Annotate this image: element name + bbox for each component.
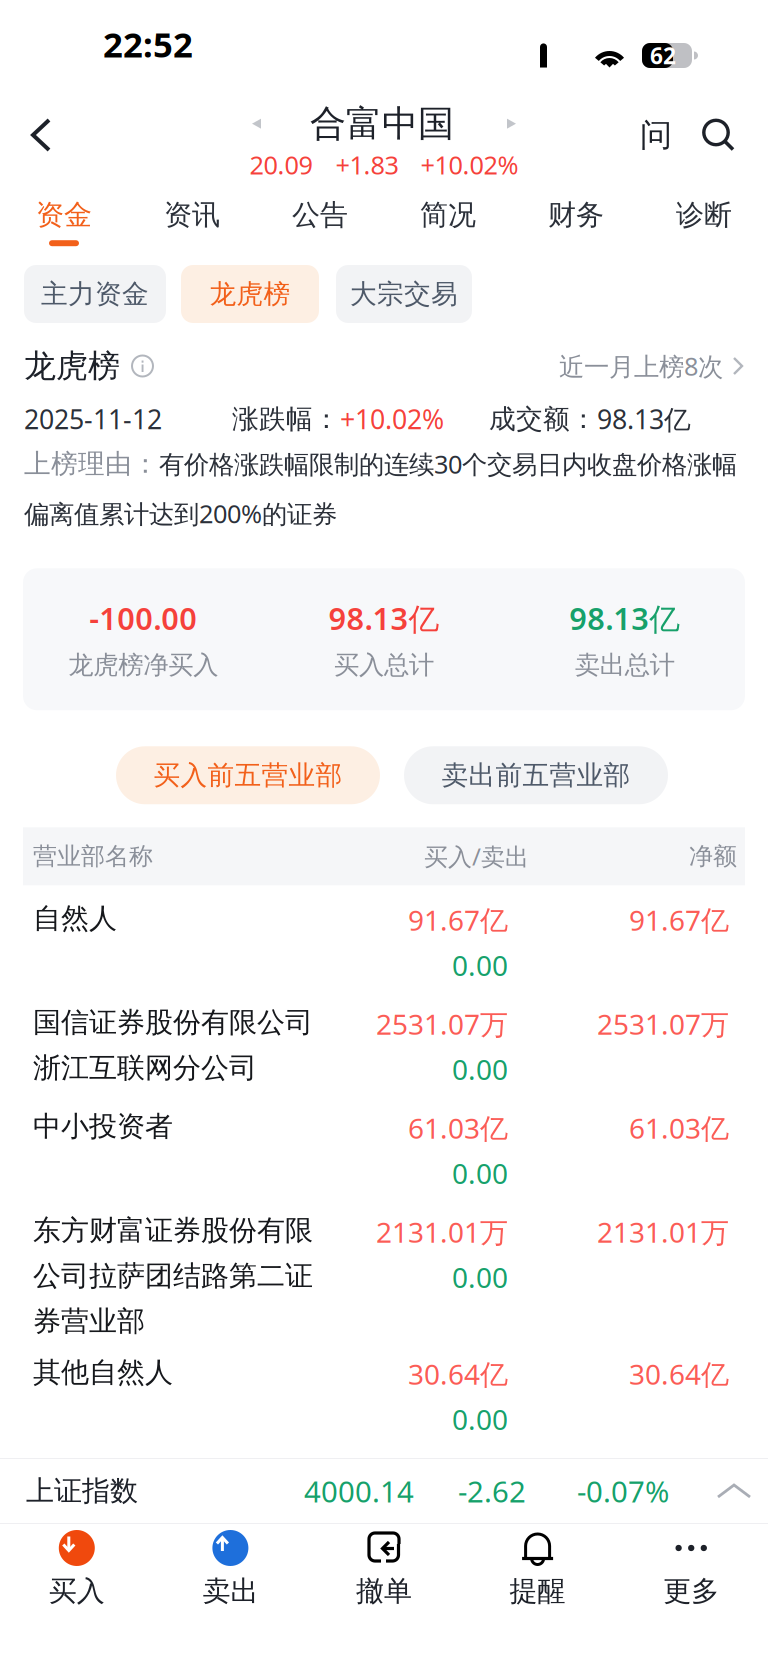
staticText: 61.03亿 [408,1109,508,1146]
button[interactable]: 搜索 [682,98,768,171]
staticText: 自然人 [33,901,117,936]
button[interactable]: 大宗交易 [336,265,472,323]
staticText: 中小投资者 [33,1109,173,1144]
staticText: 净额 [689,841,737,871]
staticText: 61.03亿 [629,1109,729,1146]
button[interactable]: 资讯 [128,182,256,258]
staticText: 22:52 [103,21,193,67]
button[interactable]: 公告 [256,182,384,258]
staticText: 2025-11-12 [24,401,162,437]
button[interactable]: 买入 [0,1530,154,1608]
staticText: 卖出总计 [575,650,675,681]
staticText: 有价格涨跌幅限制的连续30个交易日内收盘价格涨幅 [159,447,737,481]
staticText: 30.64亿 [408,1355,508,1392]
button[interactable]: 资金 [0,182,128,258]
staticText: 20.09 [249,148,312,181]
staticText: 简况 [420,198,476,232]
staticText: 2131.01万 [597,1213,729,1250]
staticText: 成交额： [489,403,597,435]
staticText: 问 [640,115,672,155]
button[interactable]: 诊断 [640,182,768,258]
staticText: 30.64亿 [629,1355,729,1392]
staticText: 近一月上榜8次 [559,349,723,383]
staticText: 诊断 [676,198,732,232]
button[interactable]: 其他自然人 [0,1339,768,1443]
staticText: 龙虎榜 [209,278,290,310]
staticText: 龙虎榜 [24,346,120,386]
staticText: 上证指数 [26,1474,138,1508]
staticText: 撤单 [356,1574,412,1608]
button[interactable]: 中小投资者 [0,1093,768,1197]
staticText: 资讯 [164,198,220,232]
staticText: 2531.07万 [597,1005,729,1042]
button[interactable]: 主力资金 [24,265,166,323]
staticText: +10.02% [420,148,518,181]
staticText: 买入/卖出 [424,840,529,872]
button[interactable]: 更多 [614,1530,768,1608]
staticText: 0.00 [452,1154,508,1192]
button[interactable]: 提醒 [461,1530,614,1608]
staticText: 62 [650,40,676,70]
staticText: 更多 [663,1574,719,1608]
button[interactable]: 自然人 [0,885,768,989]
staticText: -2.62 [458,1471,526,1510]
button[interactable]: 近一月上榜8次 [559,349,744,383]
button[interactable]: 简况 [384,182,512,258]
staticText: 买入前五营业部 [153,759,342,792]
button[interactable]: 卖出前五营业部 [404,746,668,804]
staticText: 98.13亿 [569,598,680,639]
staticText: 0.00 [452,1050,508,1088]
staticText: 上榜理由： [24,447,159,480]
button[interactable]: 买入前五营业部 [116,746,380,804]
staticText: -0.07% [577,1471,669,1510]
staticText: 0.00 [452,946,508,984]
staticText: 98.13亿 [328,598,439,639]
button[interactable]: 龙虎榜 [181,265,319,323]
button[interactable]: 卖出 [154,1530,307,1608]
button[interactable]: 国信证券股份有限公司浙江互联网分公司 [0,989,768,1093]
button[interactable]: 东方财富证券股份有限公司拉萨团结路第二证券营业部 [0,1197,768,1339]
staticText: 其他自然人 [33,1355,173,1390]
staticText: 提醒 [510,1574,566,1608]
staticText: +10.02% [340,401,444,437]
staticText: 0.00 [452,1258,508,1296]
staticText: 2131.01万 [376,1213,508,1250]
staticText: 98.13亿 [597,401,691,437]
staticText: -100.00 [89,598,197,639]
staticText: 4000.14 [304,1471,414,1510]
staticText: 卖出前五营业部 [441,759,630,792]
staticText: 资金 [36,198,92,232]
staticText: 0.00 [452,1400,508,1438]
button[interactable]: 返回 [0,98,78,172]
staticText: 买入 [49,1574,105,1608]
staticText: 主力资金 [41,278,149,310]
button[interactable]: 展开 [718,1483,750,1499]
staticText: 公告 [292,198,348,232]
staticText: 偏离值累计达到200%的证券 [24,497,337,530]
staticText: 卖出 [202,1574,258,1608]
staticText: 91.67亿 [629,901,729,938]
staticText: 龙虎榜净买入 [68,650,218,681]
staticText: 91.67亿 [408,901,508,938]
staticText: 营业部名称 [33,841,153,871]
staticText: 涨跌幅： [232,403,340,435]
staticText: 大宗交易 [350,278,458,310]
staticText: +1.83 [335,148,398,181]
staticText: 买入总计 [334,650,434,681]
staticText: 东方财富证券股份有限公司拉萨团结路第二证券营业部 [33,1213,313,1338]
button[interactable]: 撤单 [307,1530,461,1608]
staticText: 合富中国 [310,102,454,146]
staticText: 国信证券股份有限公司浙江互联网分公司 [33,1005,313,1085]
button[interactable]: 财务 [512,182,640,258]
staticText: 2531.07万 [376,1005,508,1042]
staticText: 财务 [548,198,604,232]
button[interactable]: 问答 [630,95,682,175]
